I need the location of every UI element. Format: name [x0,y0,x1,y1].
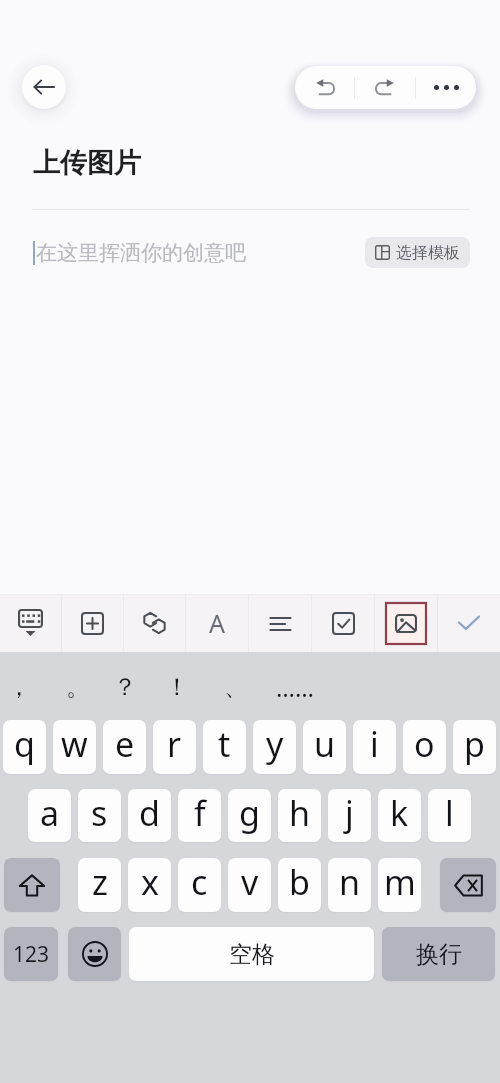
button[interactable]: e [103,720,146,774]
button[interactable]: Text style [186,594,248,652]
button[interactable]: t [203,720,246,774]
button[interactable]: x [128,858,171,912]
button[interactable]: 。 [57,667,99,707]
staticText: q [14,721,35,767]
button[interactable]: j [328,789,371,842]
button[interactable]: n [328,858,371,912]
button[interactable]: More options [416,66,476,109]
button[interactable]: k [378,789,421,842]
staticText: 选择模板 [396,243,460,263]
staticText: 换行 [416,940,462,969]
button[interactable]: Insert image [375,594,437,652]
button[interactable]: 换行 [382,927,495,981]
staticText: w [61,721,88,767]
button[interactable]: v [228,858,271,912]
button[interactable]: d [128,789,171,842]
button[interactable]: …… [274,667,316,707]
staticText: g [239,790,260,836]
staticText: y [266,721,284,767]
staticText: r [167,721,182,767]
staticText: a [40,790,60,836]
button[interactable]: 123 [4,927,58,981]
staticText: ， [7,672,31,702]
button[interactable]: l [428,789,471,842]
button[interactable]: Redo [355,66,415,109]
button[interactable]: a [28,789,71,842]
button[interactable]: h [278,789,321,842]
staticText: l [445,790,454,836]
button[interactable]: Back [22,65,66,109]
staticText: z [92,859,108,905]
staticText: k [390,790,409,836]
button[interactable]: Done [438,594,500,652]
button[interactable]: q [3,720,46,774]
staticText: m [384,859,416,905]
button[interactable]: c [178,858,221,912]
button[interactable]: Insert [62,594,123,652]
button[interactable]: 选择模板 [365,237,470,268]
button[interactable]: Hide keyboard [0,594,61,652]
staticText: e [115,721,135,767]
button[interactable]: Link [124,594,185,652]
staticText: 123 [13,940,50,969]
staticText: …… [276,671,314,704]
staticText: s [91,790,108,836]
button[interactable]: m [378,858,421,912]
staticText: 在这里挥洒你的创意吧 [36,240,246,266]
button[interactable]: g [228,789,271,842]
button[interactable]: i [353,720,396,774]
button[interactable]: y [253,720,296,774]
button[interactable]: ， [0,667,40,707]
button[interactable]: ！ [156,667,198,707]
staticText: t [218,721,231,767]
button[interactable]: ？ [104,667,146,707]
button[interactable]: w [53,720,96,774]
staticText: p [464,721,485,767]
button[interactable]: f [178,789,221,842]
button[interactable]: Emoji [68,927,121,981]
staticText: ！ [165,672,189,702]
staticText: c [191,859,208,905]
staticText: 上传图片 [33,146,141,180]
staticText: 、 [224,672,248,702]
button[interactable]: r [153,720,196,774]
staticText: d [139,790,160,836]
staticText: u [314,721,336,767]
button[interactable]: u [303,720,346,774]
button[interactable]: o [403,720,446,774]
button[interactable]: s [78,789,121,842]
staticText: i [370,721,379,767]
button[interactable]: Backspace [440,858,496,912]
button[interactable]: z [78,858,121,912]
staticText: n [339,859,361,905]
staticText: o [414,721,435,767]
button[interactable]: 、 [215,667,257,707]
staticText: j [345,790,354,836]
staticText: 。 [66,672,90,702]
staticText: x [141,859,159,905]
button[interactable]: b [278,858,321,912]
staticText: 空格 [229,940,275,969]
button[interactable]: Shift [4,858,60,912]
button[interactable]: Align [249,594,311,652]
staticText: v [241,859,259,905]
button[interactable]: p [453,720,496,774]
button[interactable]: Checklist [312,594,374,652]
staticText: b [289,859,310,905]
button[interactable]: Undo [295,66,354,109]
staticText: A [209,606,225,640]
staticText: ？ [113,672,137,702]
staticText: f [194,790,206,836]
staticText: h [289,790,311,836]
button[interactable]: 空格 [129,927,374,981]
